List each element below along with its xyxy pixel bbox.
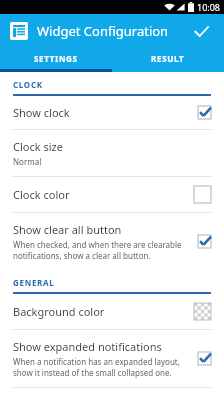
button[interactable]: Background color <box>0 294 224 329</box>
button[interactable]: Done <box>188 18 214 44</box>
staticText: RESULT <box>151 53 185 64</box>
staticText: When a notification has an expanded layo… <box>13 356 190 378</box>
button[interactable]: Clock color <box>0 177 224 212</box>
button[interactable]: Show clock <box>0 96 224 129</box>
staticText: Background color <box>13 304 105 319</box>
staticText: Normal <box>13 156 42 167</box>
staticText: Show clock <box>13 105 70 120</box>
button[interactable]: SETTINGS <box>0 48 112 69</box>
staticText: Clock size <box>13 139 63 154</box>
button[interactable]: Show clear all button <box>0 213 224 270</box>
staticText: SETTINGS <box>34 53 78 64</box>
button[interactable]: Pick clock color <box>194 186 211 203</box>
button[interactable]: Clock size <box>0 130 224 176</box>
button[interactable]: Toggle setting <box>198 235 211 248</box>
staticText: CLOCK <box>13 79 43 90</box>
button[interactable]: RESULT <box>112 48 224 69</box>
staticText: GENERAL <box>13 277 55 288</box>
button[interactable]: Pick background color <box>194 303 211 320</box>
staticText: Widget Configuration <box>37 22 169 40</box>
staticText: Show clear all button <box>13 222 122 237</box>
staticText: 10:08 <box>197 1 221 13</box>
staticText: Show expanded notifications <box>13 339 162 354</box>
button[interactable]: Toggle setting <box>198 106 211 119</box>
button[interactable]: Show expanded notifications <box>0 330 224 387</box>
staticText: Clock color <box>13 187 70 202</box>
button[interactable]: Toggle setting <box>198 352 211 365</box>
staticText: When checked, and when there are clearab… <box>13 239 190 261</box>
